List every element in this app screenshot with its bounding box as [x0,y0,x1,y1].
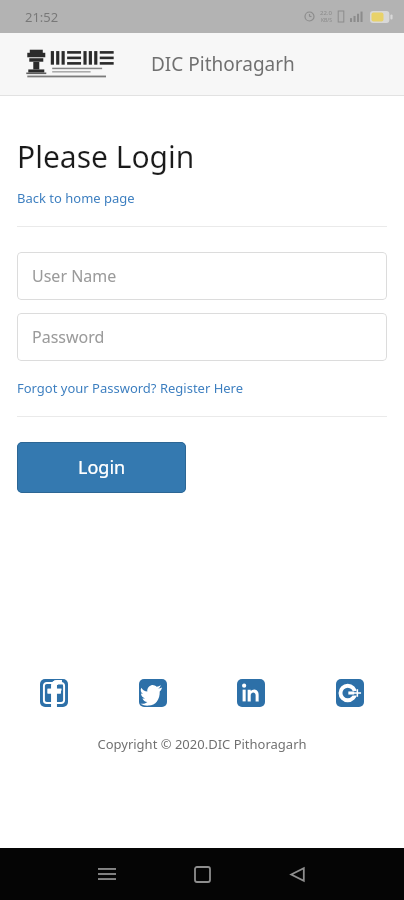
staticText: Copyright © 2020.DIC Pithoragarh [0,735,404,753]
staticText: User Name [32,265,117,287]
button[interactable]: Back to home page [17,189,135,207]
staticText: Login [78,455,126,480]
staticText: Forgot your Password? Register Here [17,379,244,397]
button[interactable]: Password [17,313,387,361]
button[interactable]: Google Plus [336,679,364,707]
staticText: 22.0 [320,9,332,17]
button[interactable]: Twitter [139,679,167,707]
button[interactable]: Menu [86,853,128,895]
button[interactable]: Home [181,853,223,895]
button[interactable]: Login [17,442,186,493]
staticText: DIC Pithoragarh [151,51,295,77]
staticText: Password [32,326,105,348]
staticText: Back to home page [17,189,135,207]
staticText: KB/S [321,17,332,24]
button[interactable]: Facebook [40,679,68,707]
staticText: Please Login [17,136,195,177]
button[interactable]: Back [276,853,318,895]
button[interactable]: User Name [17,252,387,300]
button[interactable]: Forgot your Password? Register Here [17,379,244,397]
staticText: 21:52 [25,8,59,26]
button[interactable]: LinkedIn [237,679,265,707]
